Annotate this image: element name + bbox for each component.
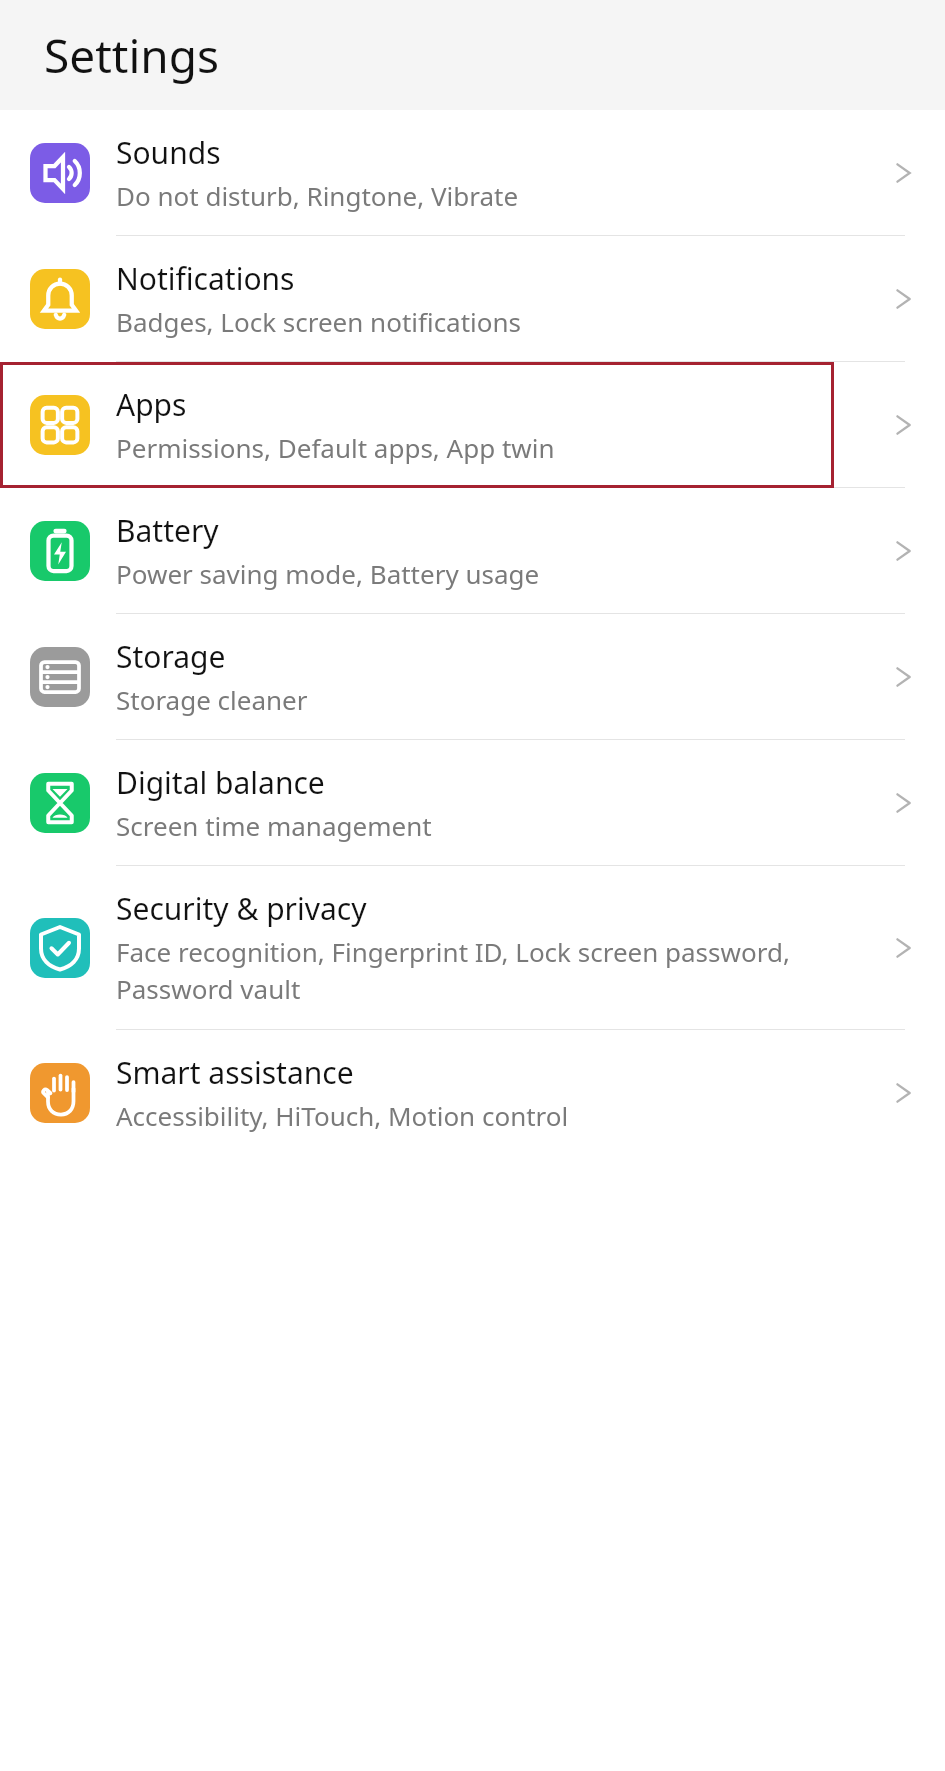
staticText: Power saving mode, Battery usage [116, 556, 540, 591]
button[interactable]: Digital balance [0, 740, 945, 865]
staticText: Storage cleaner [116, 682, 308, 717]
staticText: Apps [116, 384, 187, 425]
button[interactable]: Smart assistance [0, 1030, 945, 1155]
staticText: Do not disturb, Ringtone, Vibrate [116, 178, 519, 213]
button[interactable]: Apps [0, 362, 945, 487]
staticText: Battery [116, 510, 219, 551]
staticText: Accessibility, HiTouch, Motion control [116, 1098, 569, 1133]
staticText: Digital balance [116, 762, 325, 803]
button[interactable]: Storage [0, 614, 945, 739]
button[interactable]: Sounds [0, 110, 945, 235]
staticText: Smart assistance [116, 1052, 354, 1093]
staticText: Screen time management [116, 808, 432, 843]
staticText: Face recognition, Fingerprint ID, Lock s… [116, 934, 877, 1007]
staticText: Sounds [116, 132, 221, 173]
button[interactable]: Battery [0, 488, 945, 613]
staticText: Storage [116, 636, 226, 677]
button[interactable]: Notifications [0, 236, 945, 361]
staticText: Settings [44, 24, 220, 87]
button[interactable]: Security & privacy [0, 866, 945, 1029]
staticText: Permissions, Default apps, App twin [116, 430, 555, 465]
staticText: Badges, Lock screen notifications [116, 304, 522, 339]
staticText: Security & privacy [116, 888, 367, 929]
staticText: Notifications [116, 258, 295, 299]
